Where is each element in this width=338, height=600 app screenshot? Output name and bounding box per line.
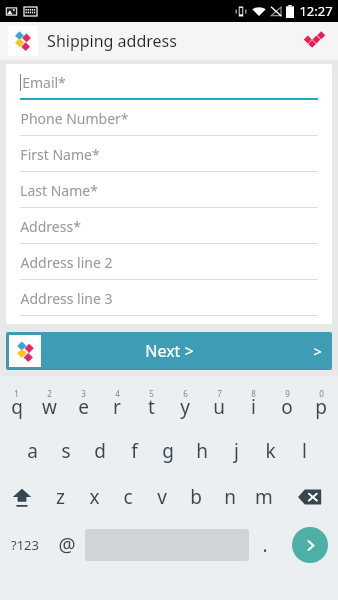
staticText: m — [255, 484, 273, 510]
button[interactable]: j — [219, 428, 253, 474]
staticText: 8 — [251, 388, 256, 399]
button[interactable]: Shift — [0, 474, 43, 520]
staticText: u — [213, 394, 225, 420]
staticText: k — [265, 438, 276, 464]
staticText: Shipping address — [47, 30, 177, 52]
staticText: h — [196, 438, 208, 464]
button[interactable]: ?123 — [0, 520, 49, 570]
staticText: f — [131, 438, 138, 464]
staticText: v — [157, 484, 167, 510]
staticText: First Name* — [20, 145, 100, 164]
staticText: 12:27 — [299, 2, 333, 20]
button[interactable]: Last Name* — [20, 172, 318, 208]
staticText: 7 — [217, 388, 222, 399]
staticText: 9 — [285, 388, 290, 399]
button[interactable]: Backspace — [281, 474, 338, 520]
button[interactable]: b — [179, 474, 213, 520]
staticText: r — [113, 394, 121, 420]
button[interactable]: h — [185, 428, 219, 474]
staticText: 6 — [183, 388, 188, 399]
button[interactable]: Confirm — [300, 26, 330, 56]
staticText: s — [61, 438, 71, 464]
button[interactable]: @ — [49, 520, 85, 570]
button[interactable]: Enter — [281, 520, 338, 570]
staticText: > — [313, 341, 322, 361]
staticText: y — [180, 394, 190, 420]
staticText: Address line 3 — [20, 289, 113, 308]
staticText: n — [224, 484, 236, 510]
staticText: 1 — [14, 388, 19, 399]
button[interactable]: First Name* — [20, 136, 318, 172]
button[interactable]: c — [111, 474, 145, 520]
staticText: i — [251, 394, 256, 420]
staticText: Email* — [22, 73, 66, 92]
staticText: x — [89, 484, 100, 510]
staticText: 0 — [319, 388, 324, 399]
button[interactable]: Next > — [6, 332, 332, 370]
staticText: c — [123, 484, 133, 510]
button[interactable]: 2 — [33, 380, 66, 428]
staticText: Address* — [20, 217, 81, 236]
button[interactable]: n — [213, 474, 247, 520]
staticText: Next > — [145, 340, 194, 362]
staticText: 2 — [47, 388, 52, 399]
staticText: q — [11, 394, 23, 420]
button[interactable]: z — [43, 474, 77, 520]
staticText: 3 — [81, 388, 86, 399]
staticText: d — [94, 438, 106, 464]
button[interactable]: Phone Number* — [20, 100, 318, 136]
button[interactable]: m — [247, 474, 281, 520]
staticText: j — [234, 438, 239, 464]
button[interactable]: 7 — [202, 380, 236, 428]
staticText: Last Name* — [20, 181, 98, 200]
staticText: w — [42, 394, 57, 420]
staticText: g — [162, 438, 174, 464]
button[interactable]: Email* — [20, 64, 318, 100]
button[interactable]: 6 — [168, 380, 202, 428]
button[interactable]: a — [16, 428, 49, 474]
staticText: ?123 — [11, 536, 39, 554]
button[interactable]: Address* — [20, 208, 318, 244]
button[interactable]: 5 — [134, 380, 168, 428]
button[interactable]: . — [249, 520, 281, 570]
button[interactable]: l — [287, 428, 321, 474]
button[interactable]: d — [83, 428, 117, 474]
staticText: 4 — [115, 388, 120, 399]
staticText: t — [148, 394, 155, 420]
button[interactable]: Address line 3 — [20, 280, 318, 316]
staticText: Phone Number* — [20, 109, 129, 128]
staticText: Address line 2 — [20, 253, 113, 272]
button[interactable]: f — [117, 428, 151, 474]
button[interactable]: 8 — [236, 380, 270, 428]
button[interactable]: 0 — [304, 380, 338, 428]
staticText: e — [78, 394, 89, 420]
staticText: b — [190, 484, 202, 510]
button[interactable]: s — [49, 428, 83, 474]
staticText: l — [302, 438, 307, 464]
staticText: o — [281, 394, 293, 420]
staticText: . — [262, 532, 268, 558]
button[interactable]: Address line 2 — [20, 244, 318, 280]
staticText: 5 — [149, 388, 154, 399]
button[interactable]: 4 — [100, 380, 134, 428]
staticText: p — [315, 394, 327, 420]
button[interactable]: v — [145, 474, 179, 520]
staticText: z — [56, 484, 65, 510]
staticText: @ — [58, 532, 76, 558]
button[interactable]: 9 — [270, 380, 304, 428]
button[interactable]: 1 — [0, 380, 33, 428]
button[interactable]: g — [151, 428, 185, 474]
button[interactable]: x — [77, 474, 111, 520]
button[interactable]: k — [253, 428, 287, 474]
button[interactable]: 3 — [66, 380, 100, 428]
staticText: a — [27, 438, 38, 464]
